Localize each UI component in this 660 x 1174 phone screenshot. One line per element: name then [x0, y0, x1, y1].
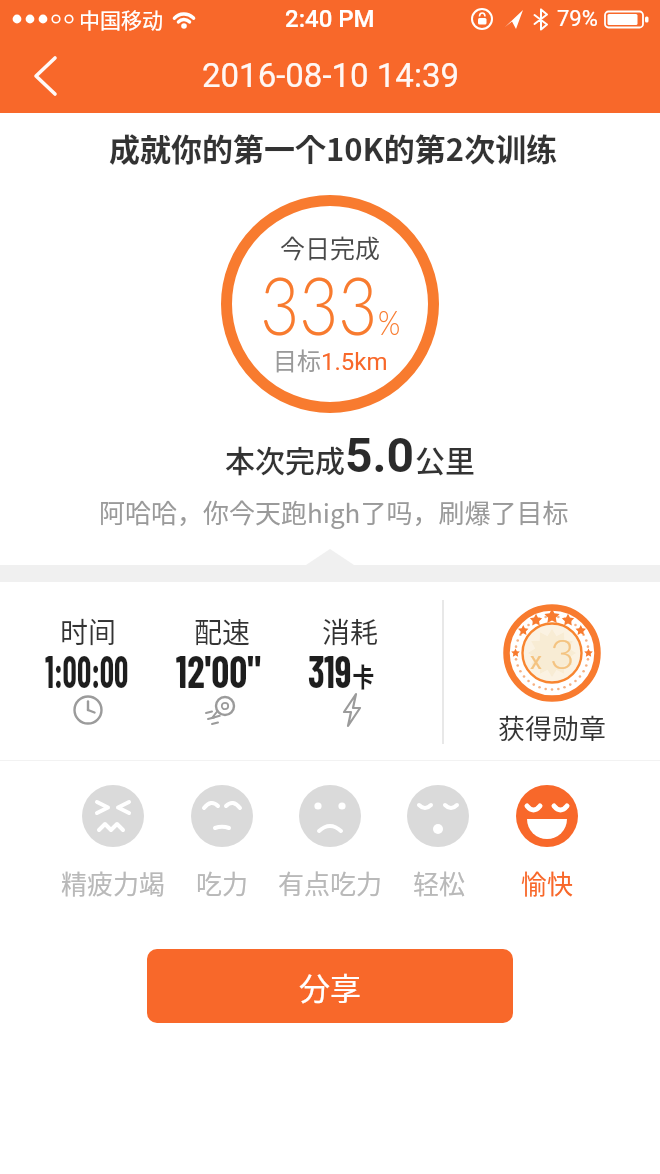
staticText: 319: [308, 643, 352, 697]
button[interactable]: x: [502, 603, 602, 703]
staticText: %: [378, 301, 401, 342]
button[interactable]: [403, 781, 473, 851]
staticText: 愉快: [521, 864, 574, 902]
staticText: x: [530, 647, 542, 675]
staticText: 精疲力竭: [61, 864, 166, 902]
staticText: 今日完成: [280, 229, 381, 265]
staticText: 333: [260, 256, 378, 334]
staticText: 本次完成: [225, 437, 345, 480]
staticText: 时间: [60, 611, 117, 652]
staticText: 1.5km: [321, 348, 388, 376]
staticText: 3: [550, 628, 575, 678]
staticText: 消耗: [322, 611, 379, 652]
staticText: 配速: [194, 611, 251, 652]
staticText: 1:00:00: [45, 643, 129, 697]
staticText: 吃力: [196, 864, 249, 902]
button[interactable]: [295, 781, 365, 851]
button[interactable]: [78, 781, 148, 851]
staticText: 79%: [557, 6, 598, 32]
staticText: 目标: [273, 342, 321, 377]
staticText: 分享: [299, 964, 361, 1009]
staticText: 成就你的第一个10K的第2次训练: [109, 125, 558, 170]
staticText: 公里: [415, 437, 475, 480]
staticText: 卡: [352, 657, 375, 695]
button[interactable]: 分享: [147, 949, 513, 1023]
staticText: 12'00": [176, 643, 261, 697]
staticText: 阿哈哈，你今天跑high了吗，刷爆了目标: [99, 493, 569, 531]
staticText: 获得勋章: [498, 708, 606, 747]
staticText: 5.0: [345, 427, 415, 483]
staticText: 中国移动: [79, 4, 163, 34]
staticText: 轻松: [413, 864, 466, 902]
button[interactable]: [18, 38, 78, 113]
button[interactable]: [512, 781, 582, 851]
staticText: 有点吃力: [278, 864, 383, 902]
staticText: 2:40 PM: [285, 5, 375, 33]
button[interactable]: [187, 781, 257, 851]
staticText: 2016-08-10 14:39: [202, 56, 459, 95]
